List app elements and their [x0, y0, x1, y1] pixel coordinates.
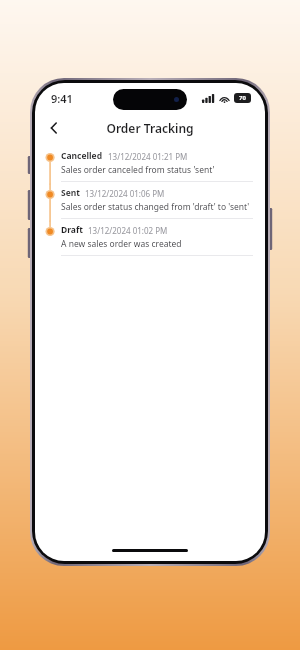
button[interactable]: Draft [35, 221, 265, 258]
staticText: 9:41 [51, 91, 73, 106]
button[interactable]: Sent [35, 184, 265, 221]
staticText: 13/12/2024 01:02 PM [88, 225, 168, 236]
staticText: Order Tracking [106, 120, 194, 136]
button[interactable]: Cancelled [35, 147, 265, 184]
staticText: Draft [61, 224, 83, 236]
staticText: Sales order canceled from status 'sent' [61, 164, 215, 176]
staticText: Sent [61, 187, 80, 199]
staticText: Cancelled [61, 150, 103, 162]
staticText: 70 [239, 94, 246, 102]
button[interactable]: Back [41, 115, 67, 141]
staticText: 13/12/2024 01:06 PM [85, 188, 165, 199]
staticText: Sales order status changed from 'draft' … [61, 201, 250, 213]
staticText: 13/12/2024 01:21 PM [108, 151, 188, 162]
staticText: A new sales order was created [61, 238, 182, 250]
